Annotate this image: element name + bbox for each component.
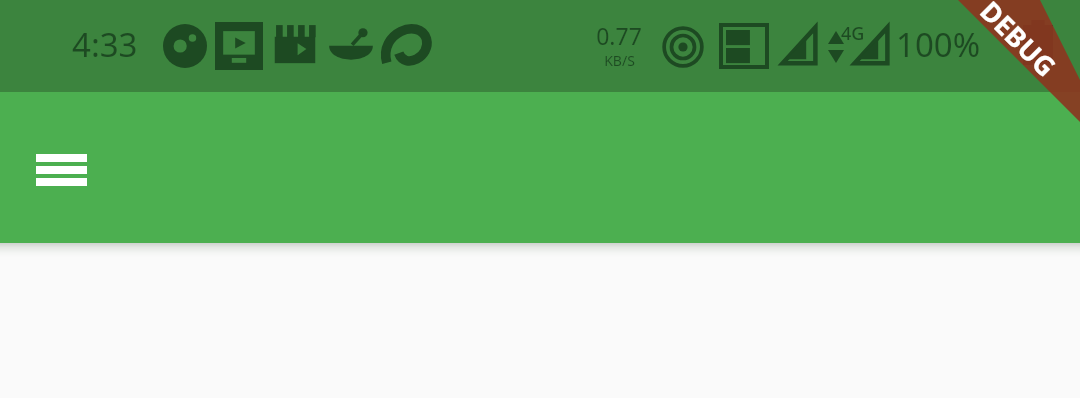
button[interactable]: Open navigation menu [25, 134, 97, 206]
staticText: DEBUG [972, 0, 1064, 84]
staticText: 0.77 [596, 20, 642, 51]
staticText: 4:33 [72, 22, 138, 67]
staticText: KB/S [604, 51, 635, 70]
staticText: 100% [896, 22, 981, 67]
staticText: 4G [841, 21, 865, 46]
